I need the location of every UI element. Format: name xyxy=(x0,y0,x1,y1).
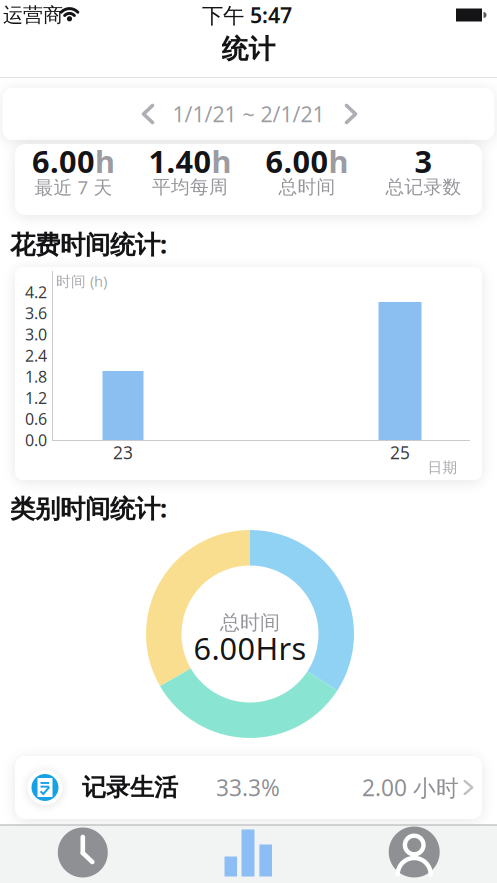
staticText: 1.2 xyxy=(25,387,47,408)
staticText: 1.40 xyxy=(149,141,212,181)
staticText: 6.00 xyxy=(32,141,95,181)
staticText: 25 xyxy=(390,441,410,464)
staticText: 33.3% xyxy=(216,772,280,802)
staticText: 时间 (h) xyxy=(56,271,107,291)
button[interactable]: 记录生活 xyxy=(15,756,482,819)
staticText: 统计 xyxy=(221,33,275,65)
staticText: 1/1/21 ~ 2/1/21 xyxy=(172,100,324,128)
staticText: 下午 5:47 xyxy=(202,1,292,29)
staticText: 3 xyxy=(415,141,433,181)
button[interactable] xyxy=(0,823,165,881)
staticText: 3.0 xyxy=(25,324,47,345)
staticText: 平均每周 xyxy=(152,175,228,198)
staticText: 运营商 xyxy=(3,3,63,27)
staticText: 类别时间统计: xyxy=(10,491,167,525)
staticText: 0.0 xyxy=(25,429,47,451)
staticText: 0.6 xyxy=(25,408,47,429)
staticText: 日期 xyxy=(427,458,457,476)
staticText: 总记录数 xyxy=(386,175,462,198)
staticText: 6.00 xyxy=(265,141,328,181)
staticText: 1.8 xyxy=(25,366,47,387)
staticText: 总时间 xyxy=(278,175,335,198)
staticText: h xyxy=(212,141,232,181)
staticText: 2.4 xyxy=(25,345,47,366)
staticText: 记录生活 xyxy=(82,773,178,802)
button[interactable] xyxy=(128,92,168,136)
button[interactable] xyxy=(331,92,371,136)
staticText: h xyxy=(95,141,115,181)
staticText: h xyxy=(328,141,348,181)
staticText: 2.00 小时 xyxy=(362,772,459,802)
staticText: 4.2 xyxy=(25,281,47,303)
staticText: 23 xyxy=(113,441,133,464)
staticText: 总时间 xyxy=(220,610,280,635)
button[interactable] xyxy=(166,823,331,881)
button[interactable] xyxy=(332,823,497,881)
staticText: 花费时间统计: xyxy=(10,227,167,261)
staticText: 3.6 xyxy=(25,302,47,324)
staticText: 6.00Hrs xyxy=(193,628,306,668)
staticText: 最近 7 天 xyxy=(34,175,112,199)
